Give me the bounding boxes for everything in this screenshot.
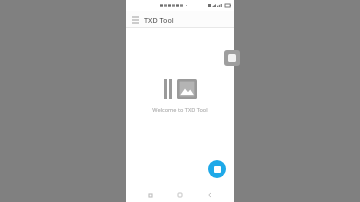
- button[interactable]: Open navigation drawer: [129, 14, 141, 26]
- button[interactable]: Back: [204, 189, 216, 201]
- button[interactable]: Home: [174, 189, 186, 201]
- staticText: TXD Tool: [144, 15, 174, 25]
- button[interactable]: Open TXD file: [208, 160, 226, 178]
- button[interactable]: Floating recorder overlay: [224, 50, 240, 66]
- button[interactable]: Recent apps: [144, 189, 156, 201]
- staticText: Welcome to TXD Tool: [152, 106, 208, 114]
